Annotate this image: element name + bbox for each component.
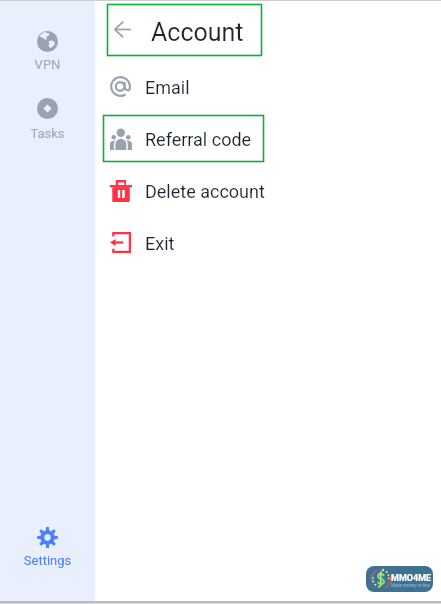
staticText: VPN	[0, 57, 95, 72]
staticText: Account	[151, 18, 244, 47]
staticText: Make money online	[391, 583, 430, 588]
staticText: Settings	[0, 553, 95, 568]
button[interactable]: Exit	[103, 219, 264, 266]
staticText: Referral code	[145, 129, 252, 150]
button[interactable]: MMO4ME watermark	[366, 566, 433, 592]
staticText: MMO4ME	[391, 573, 432, 584]
staticText: Exit	[145, 233, 175, 254]
staticText: Email	[145, 77, 190, 98]
button[interactable]: Referral code	[103, 115, 264, 162]
staticText: Tasks	[0, 126, 95, 141]
button[interactable]: Back	[107, 4, 262, 56]
button[interactable]: Delete account	[103, 167, 264, 214]
button[interactable]: Tasks	[0, 88, 95, 146]
button[interactable]: VPN	[0, 21, 95, 77]
button[interactable]: Email	[103, 63, 264, 110]
button[interactable]: Settings	[0, 517, 95, 573]
staticText: Delete account	[145, 181, 265, 202]
